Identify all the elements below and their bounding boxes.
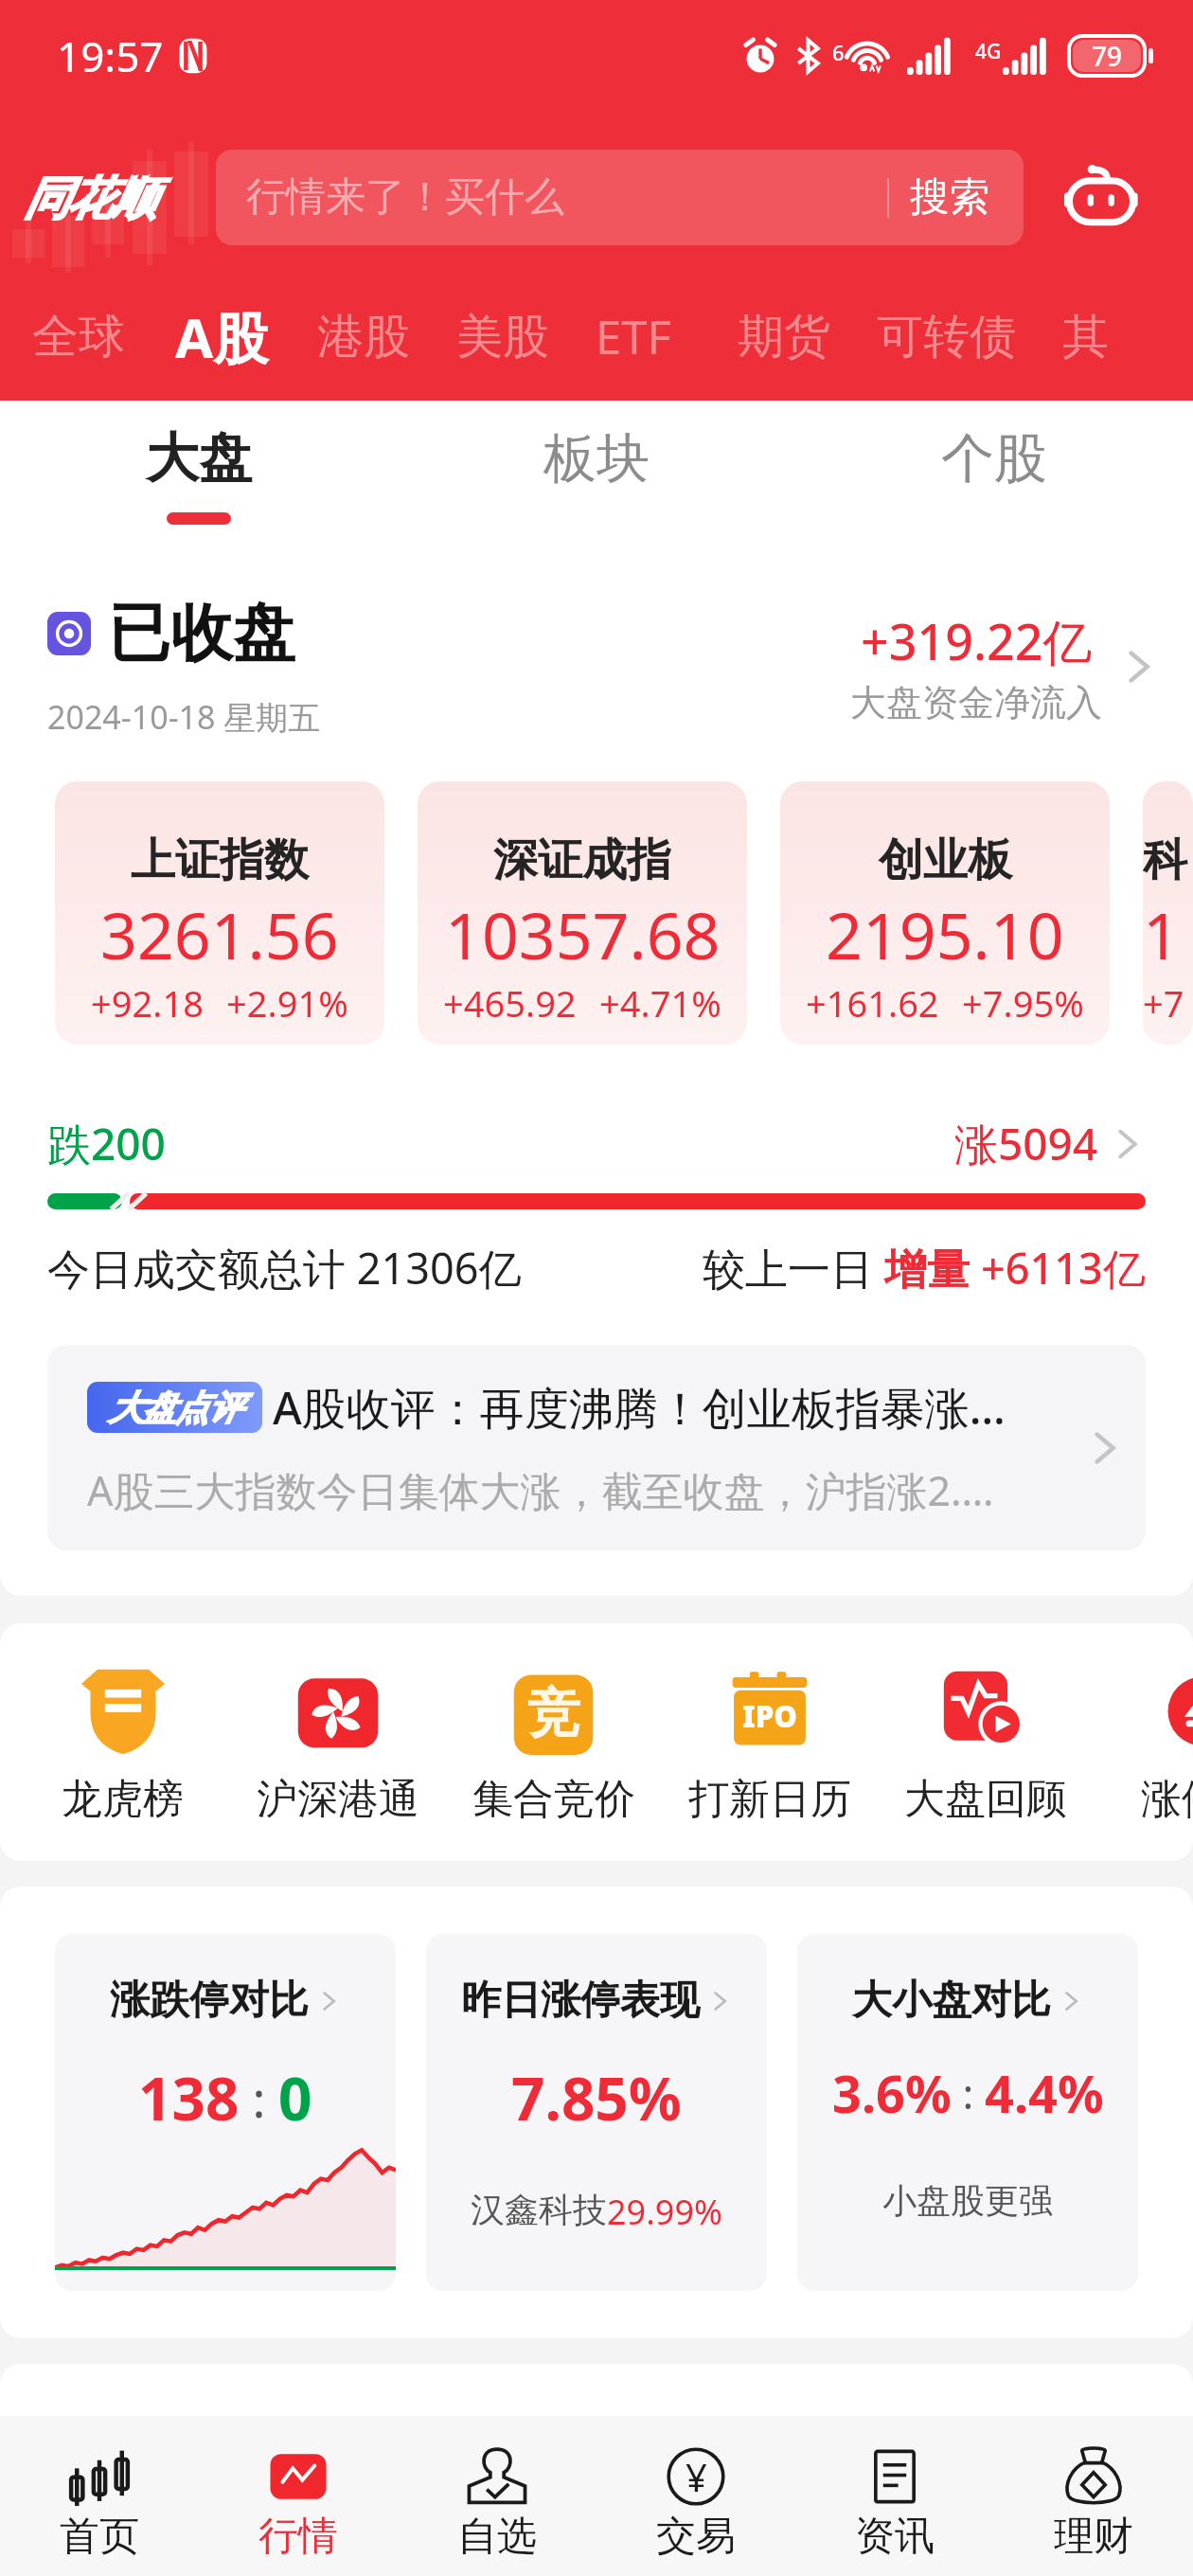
button[interactable]: 深证成指 <box>418 781 747 1045</box>
button[interactable]: 行情来了！买什么 <box>216 150 1024 245</box>
staticText: 3.6% <box>832 2058 952 2128</box>
staticText: 涨停潮 <box>1141 1774 1193 1825</box>
staticText: 7.85% <box>511 2058 682 2138</box>
button[interactable]: 大小盘对比 <box>797 1934 1138 2291</box>
staticText: 19:57 <box>57 27 164 84</box>
staticText: 全球 <box>32 308 125 367</box>
button[interactable]: 科创50 <box>1143 781 1193 1045</box>
staticText: 交易 <box>656 2512 736 2562</box>
button[interactable]: AI Assistant <box>1054 138 1148 252</box>
staticText: A股 <box>175 299 269 374</box>
staticText: 较上一日 <box>703 1239 884 1297</box>
staticText: 行情来了！买什么 <box>246 172 564 223</box>
staticText: 科创50 <box>1143 832 1193 888</box>
staticText: A股三大指数今日集体大涨，截至收盘，沪指涨2.… <box>87 1462 994 1518</box>
staticText: 4.4% <box>985 2058 1104 2128</box>
staticText: 竞 <box>527 1680 580 1747</box>
staticText: 创业板 <box>879 832 1012 888</box>
staticText: 自选 <box>457 2512 537 2562</box>
staticText: 6 <box>832 38 845 66</box>
button[interactable]: 涨跌停对比 <box>55 1934 396 2291</box>
button[interactable]: 上证指数 <box>55 781 384 1045</box>
staticText: +92.18 <box>91 978 204 1028</box>
staticText: +319.22亿 <box>861 607 1093 674</box>
button[interactable]: 港股 <box>317 308 410 367</box>
staticText: 涨5094 <box>954 1114 1098 1173</box>
staticText: 港股 <box>317 308 410 367</box>
button[interactable]: 昨日涨停表现 <box>426 1934 767 2291</box>
staticText: 龙虎榜 <box>62 1774 184 1825</box>
button[interactable]: 板块 <box>398 401 795 533</box>
button[interactable]: 首页 <box>0 2416 199 2576</box>
staticText: 今日成交额总计 21306亿 <box>47 1239 522 1297</box>
staticText: 汉鑫科技 <box>471 2189 607 2231</box>
button[interactable]: 期货 <box>738 308 830 367</box>
button[interactable]: 已收盘 <box>47 594 1159 739</box>
staticText: 涨跌停对比 <box>110 1976 309 2026</box>
staticText: 昨日涨停表现 <box>461 1976 700 2026</box>
button[interactable]: 资讯 <box>795 2416 994 2576</box>
staticText: 1050.11 <box>1143 890 1193 978</box>
button[interactable]: 理财 <box>994 2416 1193 2576</box>
staticText: 79 <box>1092 38 1123 74</box>
button[interactable]: 美股 <box>456 308 549 367</box>
staticText: +161.62 <box>806 978 939 1028</box>
staticText: IPO <box>742 1696 797 1736</box>
staticText: 打新日历 <box>688 1774 851 1825</box>
button[interactable]: ETF <box>596 305 671 368</box>
button[interactable]: 大盘 <box>0 401 398 533</box>
staticText: 个股 <box>941 425 1047 492</box>
staticText: 搜索 <box>910 172 989 223</box>
staticText: +2.91% <box>226 978 348 1028</box>
button[interactable]: 自选 <box>398 2416 596 2576</box>
staticText: +7.95% <box>962 978 1084 1028</box>
button[interactable]: 龙虎榜 <box>18 1664 226 1825</box>
staticText: 已收盘 <box>108 594 295 672</box>
staticText: 资讯 <box>855 2512 935 2562</box>
staticText: 增量 <box>884 1239 981 1297</box>
staticText: +6113亿 <box>981 1239 1146 1297</box>
staticText: 美股 <box>456 308 549 367</box>
staticText: 首页 <box>60 2512 139 2562</box>
button[interactable]: 大盘点评 <box>47 1345 1146 1550</box>
staticText: 板块 <box>543 425 650 492</box>
staticText: 大盘资金净流入 <box>850 680 1102 725</box>
button[interactable]: A股 <box>175 299 269 374</box>
button[interactable]: 沪深港通 <box>234 1664 442 1825</box>
button[interactable]: ¥ <box>596 2416 795 2576</box>
staticText: 集合竞价 <box>472 1774 635 1825</box>
staticText: 大小盘对比 <box>852 1976 1051 2026</box>
button[interactable]: 全球 <box>32 308 125 367</box>
button[interactable]: 其他 <box>1062 308 1147 367</box>
staticText: 大盘点评 <box>109 1386 241 1429</box>
staticText: +4.71% <box>599 978 721 1028</box>
button[interactable]: 可转债 <box>877 308 1016 367</box>
button[interactable]: 跌200 <box>47 1114 1146 1173</box>
staticText: 2195.10 <box>826 890 1064 978</box>
staticText: 理财 <box>1054 2512 1133 2562</box>
staticText: 29.99% <box>607 2189 722 2235</box>
button[interactable]: 竞 <box>450 1664 658 1825</box>
button[interactable]: 涨停潮 <box>1097 1664 1193 1825</box>
staticText: 可转债 <box>877 308 1016 367</box>
staticText: 深证成指 <box>493 832 671 888</box>
staticText: 138 <box>138 2058 240 2138</box>
button[interactable]: 创业板 <box>780 781 1110 1045</box>
staticText: +465.92 <box>443 978 577 1028</box>
staticText: 同花顺 <box>25 170 155 227</box>
staticText: : <box>240 2065 278 2132</box>
staticText: 期货 <box>738 308 830 367</box>
button[interactable]: IPO <box>666 1664 874 1825</box>
staticText: 2024-10-18 星期五 <box>47 695 321 739</box>
staticText: 沪深港通 <box>257 1774 419 1825</box>
button[interactable]: 大盘回顾 <box>881 1664 1090 1825</box>
button[interactable]: 行情 <box>199 2416 398 2576</box>
staticText: 其他 <box>1062 308 1147 367</box>
staticText: 10357.68 <box>445 890 721 978</box>
staticText: : <box>952 2065 985 2121</box>
staticText: 4G <box>975 38 1002 65</box>
staticText: 行情 <box>258 2512 338 2562</box>
staticText: ETF <box>596 305 671 368</box>
staticText: 上证指数 <box>131 832 309 888</box>
button[interactable]: 个股 <box>795 401 1193 533</box>
